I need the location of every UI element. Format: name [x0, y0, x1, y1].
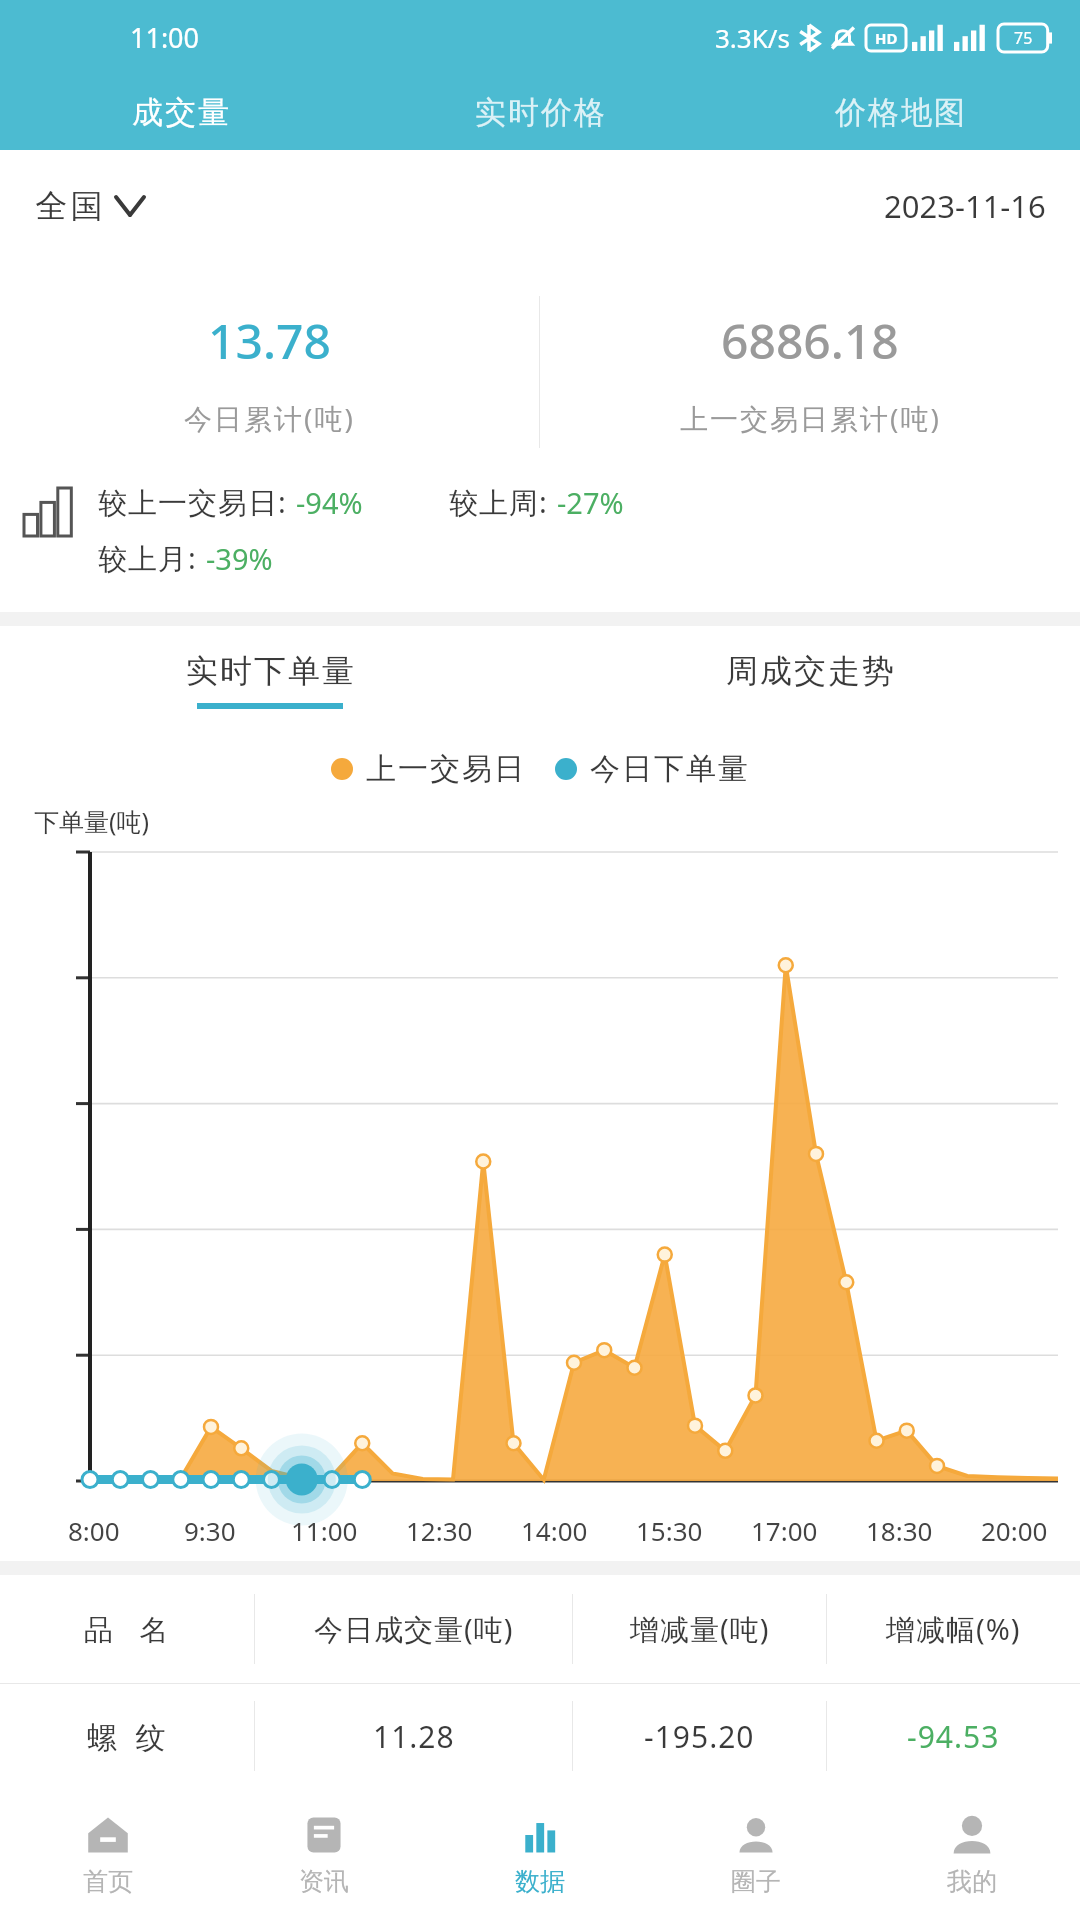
button[interactable]: 实时下单量 [0, 626, 540, 734]
staticText: 15:30 [636, 1513, 703, 1548]
staticText: -27% [557, 483, 624, 522]
staticText: 14:00 [521, 1513, 588, 1548]
staticText: 上一交易日累计(吨) [680, 399, 941, 437]
staticText: 周成交走势 [725, 651, 895, 691]
staticText: HD [875, 28, 898, 48]
button[interactable]: 螺 纹 [0, 1684, 1080, 1788]
staticText: 较上一交易日: [98, 482, 296, 522]
staticText: 成交量 [131, 93, 230, 132]
staticText: 11:00 [291, 1513, 358, 1548]
staticText: 实时价格 [474, 93, 606, 132]
staticText: 品 名 [84, 1609, 170, 1649]
staticText: -94.53 [907, 1716, 1000, 1757]
staticText: 数据 [515, 1866, 565, 1897]
staticText: 较上月: [98, 538, 206, 578]
button[interactable]: 我的 [864, 1788, 1080, 1920]
staticText: 17:00 [751, 1513, 818, 1548]
button[interactable]: 成交量 [0, 74, 360, 150]
staticText: 圈子 [731, 1866, 781, 1897]
staticText: 2023-11-16 [884, 185, 1046, 227]
staticText: 11.28 [373, 1716, 455, 1757]
staticText: 今日下单量 [589, 750, 749, 788]
staticText: 13.78 [208, 308, 331, 373]
button[interactable]: 全国 [34, 186, 144, 226]
staticText: 今日成交量(吨) [314, 1609, 514, 1649]
staticText: 实时下单量 [185, 651, 355, 691]
staticText: 全国 [34, 186, 104, 226]
staticText: 20:00 [981, 1513, 1048, 1548]
staticText: 3.3K/s [715, 20, 790, 55]
staticText: 8:00 [68, 1513, 120, 1548]
button[interactable]: 周成交走势 [540, 626, 1080, 734]
button[interactable]: 实时价格 [360, 74, 720, 150]
staticText: 增减量(吨) [630, 1609, 770, 1649]
button[interactable]: 资讯 [216, 1788, 432, 1920]
staticText: 18:30 [866, 1513, 933, 1548]
staticText: 资讯 [299, 1866, 349, 1897]
staticText: 较上周: [449, 482, 557, 522]
button[interactable]: 数据 [432, 1788, 648, 1920]
staticText: 6886.18 [721, 308, 899, 373]
staticText: 首页 [83, 1866, 133, 1897]
staticText: 我的 [947, 1866, 997, 1897]
button[interactable]: 价格地图 [720, 74, 1080, 150]
staticText: 螺 纹 [87, 1716, 167, 1757]
staticText: 12:30 [406, 1513, 473, 1548]
staticText: 11:00 [130, 19, 200, 56]
button[interactable]: 圈子 [648, 1788, 864, 1920]
staticText: 增减幅(%) [886, 1609, 1021, 1649]
staticText: 75 [1014, 27, 1033, 49]
staticText: -195.20 [644, 1716, 755, 1757]
button[interactable]: 首页 [0, 1788, 216, 1920]
staticText: 上一交易日 [365, 750, 525, 788]
staticText: 今日累计(吨) [184, 399, 355, 437]
staticText: 9:30 [184, 1513, 236, 1548]
staticText: -94% [296, 483, 363, 522]
staticText: 价格地图 [834, 93, 966, 132]
staticText: -39% [206, 539, 273, 578]
staticText: 下单量(吨) [34, 804, 150, 838]
